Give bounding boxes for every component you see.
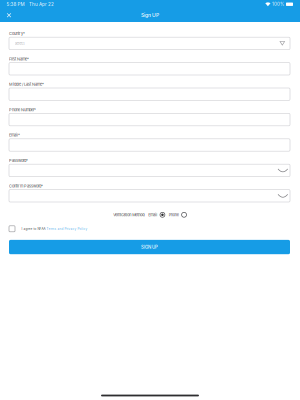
staticText: Confirm Password* bbox=[9, 184, 43, 188]
button[interactable]: SIGN UP bbox=[9, 240, 290, 254]
staticText: Country* bbox=[9, 31, 25, 36]
staticText: 5:38 PM bbox=[6, 1, 24, 7]
staticText: Email* bbox=[9, 133, 20, 138]
button[interactable] bbox=[9, 164, 290, 177]
staticText: Password* bbox=[9, 158, 28, 163]
button[interactable]: Select bbox=[9, 37, 290, 50]
staticText: Thu Apr 22 bbox=[29, 1, 54, 7]
staticText: I agree to NFAA bbox=[21, 227, 46, 231]
staticText: 100% bbox=[272, 2, 284, 7]
staticText: SIGN UP bbox=[141, 244, 158, 250]
staticText: Terms and Privacy Policy bbox=[46, 227, 87, 231]
button[interactable] bbox=[9, 63, 290, 75]
button[interactable] bbox=[9, 88, 290, 100]
button[interactable]: I agree to NFAA bbox=[9, 224, 87, 233]
button[interactable] bbox=[9, 113, 290, 126]
button[interactable]: Phone verification bbox=[179, 212, 187, 218]
staticText: Sign UP bbox=[141, 12, 159, 18]
staticText: Email bbox=[148, 212, 157, 217]
staticText: Middle / Last Name* bbox=[9, 82, 44, 87]
staticText: Phone bbox=[169, 212, 179, 217]
button[interactable] bbox=[9, 190, 290, 202]
button[interactable]: Email verification bbox=[157, 212, 165, 218]
staticText: Phone Number* bbox=[9, 107, 36, 112]
staticText: First Name* bbox=[9, 57, 29, 61]
staticText: Select bbox=[14, 41, 24, 46]
staticText: Verification Method: bbox=[113, 212, 145, 217]
button[interactable]: Close bbox=[0, 8, 18, 22]
